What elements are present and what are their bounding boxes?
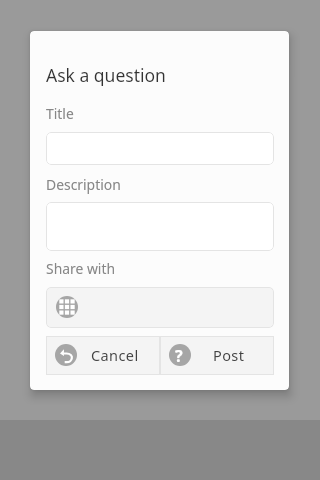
other: Post <box>169 344 191 366</box>
staticText: Cancel <box>91 345 139 365</box>
button[interactable]: Post <box>160 336 274 375</box>
staticText: ? <box>175 345 183 367</box>
staticText: Post <box>213 345 245 365</box>
staticText: Ask a question <box>46 63 166 87</box>
button[interactable] <box>46 132 274 165</box>
button[interactable]: Cancel <box>46 336 160 375</box>
staticText: Share with <box>46 259 116 278</box>
staticText: Description <box>46 175 121 194</box>
button[interactable] <box>46 202 274 251</box>
other: Cancel <box>55 344 77 366</box>
staticText: Title <box>46 104 74 123</box>
button[interactable]: Share with <box>46 287 274 328</box>
